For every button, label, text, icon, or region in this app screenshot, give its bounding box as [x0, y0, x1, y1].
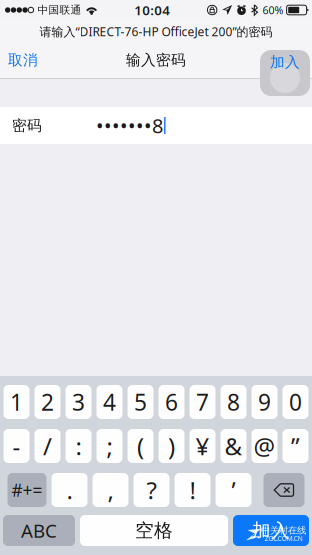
staticText: & — [224, 430, 242, 462]
button[interactable]: . — [51, 473, 87, 507]
button[interactable]: & — [220, 429, 246, 463]
button[interactable]: ; — [96, 429, 122, 463]
staticText: 4 — [103, 387, 116, 417]
staticText: 0 — [289, 387, 302, 417]
button[interactable]: 6 — [158, 385, 184, 419]
staticText: 10:04 — [134, 1, 170, 19]
staticText: / — [43, 430, 52, 462]
staticText: 加入 — [274, 51, 304, 69]
staticText: @ — [253, 430, 275, 462]
staticText: ABC — [21, 518, 57, 543]
staticText: 加入 — [270, 53, 300, 71]
staticText: ) — [168, 430, 175, 462]
button[interactable]: 2 — [34, 385, 60, 419]
staticText: - — [12, 430, 20, 462]
staticText: 9 — [258, 387, 271, 417]
staticText: 2 — [41, 387, 54, 417]
staticText: ZOL.COM.CN — [264, 534, 302, 543]
staticText: 3 — [72, 387, 85, 417]
button[interactable]: - — [3, 429, 29, 463]
staticText: 1 — [10, 387, 23, 417]
button[interactable]: 空格 — [80, 515, 228, 546]
button[interactable]: 加入 — [267, 45, 311, 75]
staticText: , — [107, 474, 113, 506]
button[interactable]: ) — [158, 429, 184, 463]
staticText: 密码 — [12, 116, 42, 134]
button[interactable]: 取消 — [1, 45, 45, 75]
button[interactable]: Delete — [263, 473, 304, 507]
button[interactable]: 3 — [65, 385, 91, 419]
button[interactable]: #+= — [7, 473, 46, 507]
staticText: ? — [146, 474, 156, 506]
button[interactable]: ( — [127, 429, 153, 463]
staticText: ( — [137, 430, 144, 462]
button[interactable]: ? — [133, 473, 169, 507]
button[interactable]: @ — [251, 429, 277, 463]
staticText: ¥ — [195, 430, 209, 462]
staticText: 中国联通 — [38, 3, 82, 16]
staticText: 输入密码 — [126, 51, 186, 69]
button[interactable]: 9 — [251, 385, 277, 419]
staticText: 空格 — [135, 519, 173, 542]
button[interactable]: ABC — [3, 515, 75, 546]
staticText: #+= — [11, 478, 42, 501]
staticText: ; — [106, 430, 112, 462]
staticText: •••••••8 — [96, 112, 163, 139]
button[interactable]: 1 — [3, 385, 29, 419]
button[interactable]: ! — [174, 473, 210, 507]
staticText: 请输入“DIRECT-76-HP OfficeJet 200”的密码 — [39, 23, 272, 39]
staticText: ” — [291, 430, 300, 462]
staticText: ’ — [231, 474, 235, 506]
staticText: 中关村在线 — [261, 525, 306, 536]
button[interactable]: / — [34, 429, 60, 463]
button[interactable]: ¥ — [189, 429, 215, 463]
button[interactable]: 加入 — [260, 50, 310, 96]
staticText: 6 — [165, 387, 178, 417]
button[interactable]: : — [65, 429, 91, 463]
staticText: 8 — [227, 387, 240, 417]
staticText: 取消 — [8, 51, 38, 69]
button[interactable]: 4 — [96, 385, 122, 419]
staticText: ! — [189, 474, 195, 506]
button[interactable]: 5 — [127, 385, 153, 419]
button[interactable]: 8 — [220, 385, 246, 419]
button[interactable]: , — [92, 473, 128, 507]
button[interactable]: 加入 — [233, 515, 309, 546]
staticText: 7 — [196, 387, 209, 417]
staticText: : — [75, 430, 81, 462]
staticText: 5 — [134, 387, 147, 417]
staticText: 60% — [263, 3, 284, 17]
button[interactable]: ” — [282, 429, 308, 463]
button[interactable]: ’ — [215, 473, 251, 507]
button[interactable]: 7 — [189, 385, 215, 419]
staticText: 加入 — [252, 519, 290, 542]
button[interactable]: 0 — [282, 385, 308, 419]
staticText: . — [66, 474, 72, 506]
